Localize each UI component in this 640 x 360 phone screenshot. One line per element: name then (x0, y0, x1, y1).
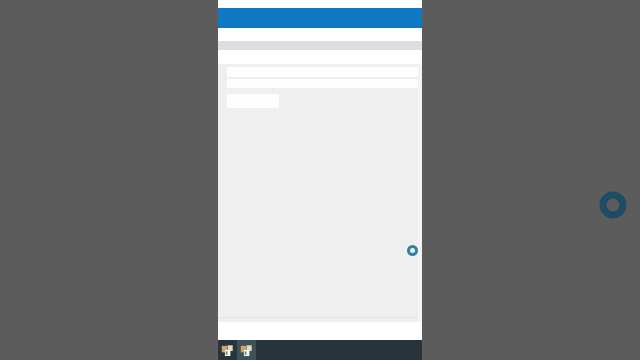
other: Busy indicator (407, 245, 418, 256)
other: Loading (599, 191, 627, 219)
button[interactable]: Application (218, 340, 237, 360)
button[interactable]: Application (237, 340, 256, 360)
